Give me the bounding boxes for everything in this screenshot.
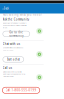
staticText: Call us [3,66,12,70]
staticText: Chat online with a specialist about [3,47,23,49]
button[interactable]: ‹ [0,3,8,13]
staticText: Call 1-800-555-0199 [5,88,36,92]
staticText: Get answers from other customers [3,22,27,24]
staticText: and experts in our online community [3,25,27,26]
staticText: forum. [3,27,7,29]
staticText: Back [3,7,8,10]
staticText: rates may apply. [3,76,14,77]
staticText: We'll need to verify your identity [3,71,22,73]
staticText: before we can help. Standard call [3,73,25,75]
button[interactable]: Call 1-800-555-0199 [2,87,40,93]
staticText: Not seeing what you need? [3,13,42,16]
staticText: ‹ [2,6,3,11]
staticText: Start a chat [7,58,20,61]
staticText: Go to the community [9,30,23,37]
button[interactable]: Start a chat [3,57,24,62]
staticText: your account. [3,49,13,51]
staticText: Chat with us [3,42,20,46]
staticText: Ask the Community [3,18,29,21]
button[interactable]: Go to the community [3,31,30,37]
